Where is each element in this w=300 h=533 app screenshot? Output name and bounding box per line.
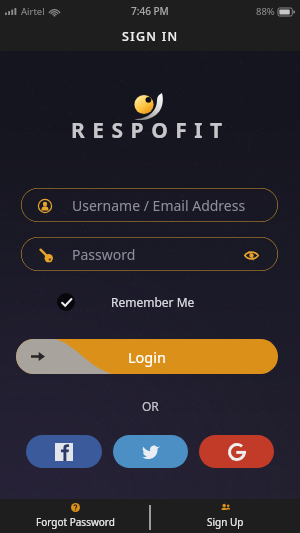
staticText: 7:46 PM (131, 4, 169, 18)
button[interactable]: Sign Up (150, 499, 300, 533)
staticText: Remember Me (111, 294, 195, 310)
button[interactable]: Sign in with Google (199, 435, 274, 468)
button[interactable]: Password (21, 237, 278, 271)
button[interactable]: Remember Me (57, 292, 195, 311)
staticText: Airtel (21, 5, 45, 18)
button[interactable]: Username / Email Address (21, 188, 278, 222)
staticText: 88% (256, 5, 275, 18)
staticText: OR (142, 398, 159, 414)
staticText: Username / Email Address (72, 196, 246, 215)
button[interactable]: Sign in with Twitter (113, 435, 188, 468)
button[interactable]: Sign in with Facebook (26, 435, 102, 468)
staticText: Sign Up (207, 515, 244, 529)
staticText: Forgot Password (36, 515, 115, 529)
button[interactable]: Forgot Password (0, 499, 150, 533)
staticText: Password (72, 245, 136, 264)
staticText: SIGN IN (122, 28, 179, 45)
button[interactable]: Login (16, 339, 278, 374)
staticText: RESPOFIT (71, 116, 230, 145)
staticText: Login (128, 347, 166, 367)
button[interactable]: Show password (243, 247, 259, 263)
